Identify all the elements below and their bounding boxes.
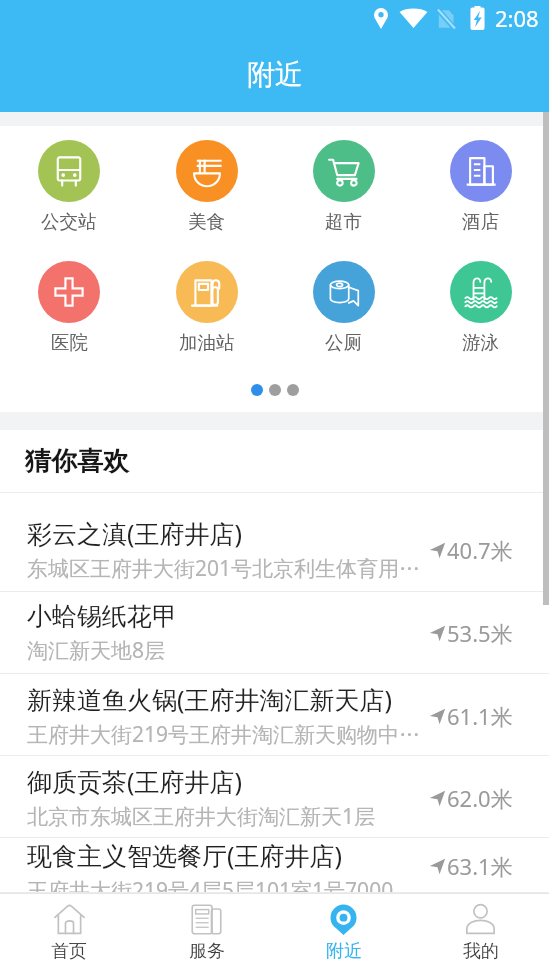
staticText: 酒店 bbox=[462, 210, 499, 233]
staticText: 美食 bbox=[188, 210, 225, 233]
staticText: 服务 bbox=[189, 940, 225, 963]
staticText: 附近 bbox=[247, 57, 303, 92]
staticText: 我的 bbox=[463, 940, 499, 963]
button[interactable]: 医院 bbox=[0, 261, 138, 354]
button[interactable]: 加油站 bbox=[138, 261, 275, 354]
staticText: 猜你喜欢 bbox=[25, 445, 129, 478]
button[interactable]: Nearby bbox=[275, 894, 412, 976]
button[interactable]: 酒店 bbox=[412, 140, 549, 233]
button[interactable]: 游泳 bbox=[412, 261, 549, 354]
staticText: 2:08 bbox=[495, 3, 539, 33]
button[interactable]: 御质贡茶(王府井店) bbox=[0, 756, 549, 838]
button[interactable]: 现食主义智选餐厅(王府井店) bbox=[0, 838, 549, 893]
staticText: 医院 bbox=[51, 331, 88, 354]
staticText: 新辣道鱼火锅(王府井淘汇新天店) bbox=[27, 682, 393, 716]
button[interactable]: 超市 bbox=[275, 140, 412, 233]
staticText: 公厕 bbox=[325, 331, 362, 354]
staticText: 现食主义智选餐厅(王府井店) bbox=[27, 838, 343, 872]
staticText: 附近 bbox=[326, 940, 362, 963]
staticText: 61.1米 bbox=[447, 701, 513, 731]
staticText: 小蛤锡纸花甲 bbox=[27, 601, 177, 632]
staticText: 御质贡茶(王府井店) bbox=[27, 764, 243, 798]
button[interactable]: Services bbox=[138, 894, 275, 976]
staticText: 62.0米 bbox=[447, 783, 513, 813]
staticText: 加油站 bbox=[179, 331, 235, 354]
button[interactable]: 公厕 bbox=[275, 261, 412, 354]
staticText: 首页 bbox=[51, 940, 87, 963]
staticText: 63.1米 bbox=[447, 851, 513, 881]
staticText: 北京市东城区王府井大街淘汇新天1层 bbox=[27, 802, 376, 831]
button[interactable]: 小蛤锡纸花甲 bbox=[0, 592, 549, 674]
button[interactable]: 新辣道鱼火锅(王府井淘汇新天店) bbox=[0, 674, 549, 756]
staticText: 游泳 bbox=[462, 331, 499, 354]
staticText: 东城区王府井大街201号北京利生体育用品商厦3层 bbox=[27, 554, 421, 583]
staticText: 公交站 bbox=[41, 210, 97, 233]
staticText: 超市 bbox=[325, 210, 362, 233]
staticText: 淘汇新天地8层 bbox=[27, 636, 166, 665]
staticText: 53.5米 bbox=[447, 618, 513, 648]
button[interactable]: Home bbox=[0, 894, 138, 976]
staticText: 彩云之滇(王府井店) bbox=[27, 516, 243, 550]
staticText: 王府井大街219号4层5层101室1号7000 bbox=[27, 876, 394, 893]
staticText: 王府井大街219号王府井淘汇新天购物中心5层 bbox=[27, 720, 421, 749]
button[interactable]: 公交站 bbox=[0, 140, 138, 233]
button[interactable]: 彩云之滇(王府井店) bbox=[0, 493, 549, 592]
button[interactable]: Profile bbox=[412, 894, 549, 976]
button[interactable]: 美食 bbox=[138, 140, 275, 233]
staticText: 40.7米 bbox=[447, 535, 513, 565]
